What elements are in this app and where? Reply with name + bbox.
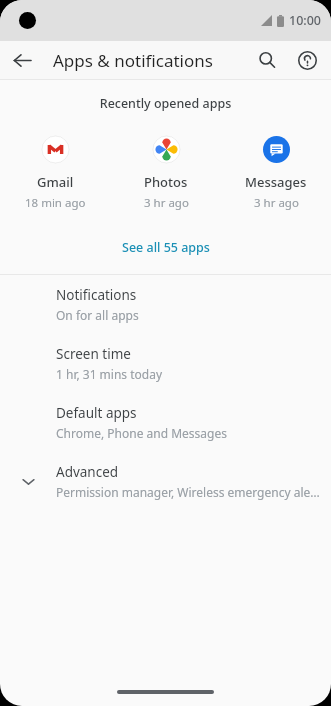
staticText: Notifications	[56, 286, 137, 304]
staticText: Advanced	[56, 463, 119, 481]
staticText: Chrome, Phone and Messages	[56, 425, 227, 441]
button[interactable]: Default apps	[0, 393, 331, 452]
staticText: 10:00	[289, 12, 322, 29]
button[interactable]: Notifications	[0, 275, 331, 334]
button[interactable]: Help	[287, 41, 327, 79]
staticText: Apps & notifications	[53, 49, 213, 72]
button[interactable]: See all 55 apps	[0, 233, 331, 262]
staticText: 3 hr ago	[254, 195, 299, 211]
staticText: 3 hr ago	[144, 195, 189, 211]
button[interactable]: Messages	[221, 136, 331, 211]
button[interactable]: Advanced	[0, 452, 331, 511]
staticText: Default apps	[56, 404, 137, 422]
button[interactable]: Gmail	[0, 136, 111, 211]
staticText: Screen time	[56, 345, 131, 363]
staticText: Photos	[144, 173, 188, 191]
button[interactable]: Back	[0, 41, 44, 79]
staticText: Gmail	[37, 173, 74, 191]
button[interactable]: Photos	[111, 136, 221, 211]
staticText: Permission manager, Wireless emergency a…	[56, 484, 321, 500]
staticText: On for all apps	[56, 307, 139, 323]
staticText: 1 hr, 31 mins today	[56, 366, 163, 382]
staticText: 18 min ago	[25, 195, 86, 211]
staticText: See all 55 apps	[122, 239, 210, 256]
button[interactable]: Search	[247, 41, 287, 79]
button[interactable]: Screen time	[0, 334, 331, 393]
staticText: Messages	[245, 173, 307, 191]
staticText: Recently opened apps	[0, 95, 331, 112]
